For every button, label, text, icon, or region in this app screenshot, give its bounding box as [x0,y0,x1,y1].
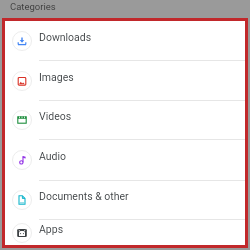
button[interactable]: Downloads [5,21,245,60]
button[interactable]: Documents & other [5,181,245,219]
button[interactable]: Images [5,61,245,100]
button[interactable]: Videos [5,101,245,139]
staticText: Apps [39,223,64,235]
staticText: Categories [10,1,56,12]
staticText: Documents & other [39,190,129,202]
staticText: Audio [39,150,67,162]
staticText: Images [39,71,74,83]
button[interactable]: Apps [5,220,245,245]
staticText: Videos [39,110,72,122]
staticText: Downloads [39,31,92,43]
button[interactable]: Audio [5,140,245,180]
